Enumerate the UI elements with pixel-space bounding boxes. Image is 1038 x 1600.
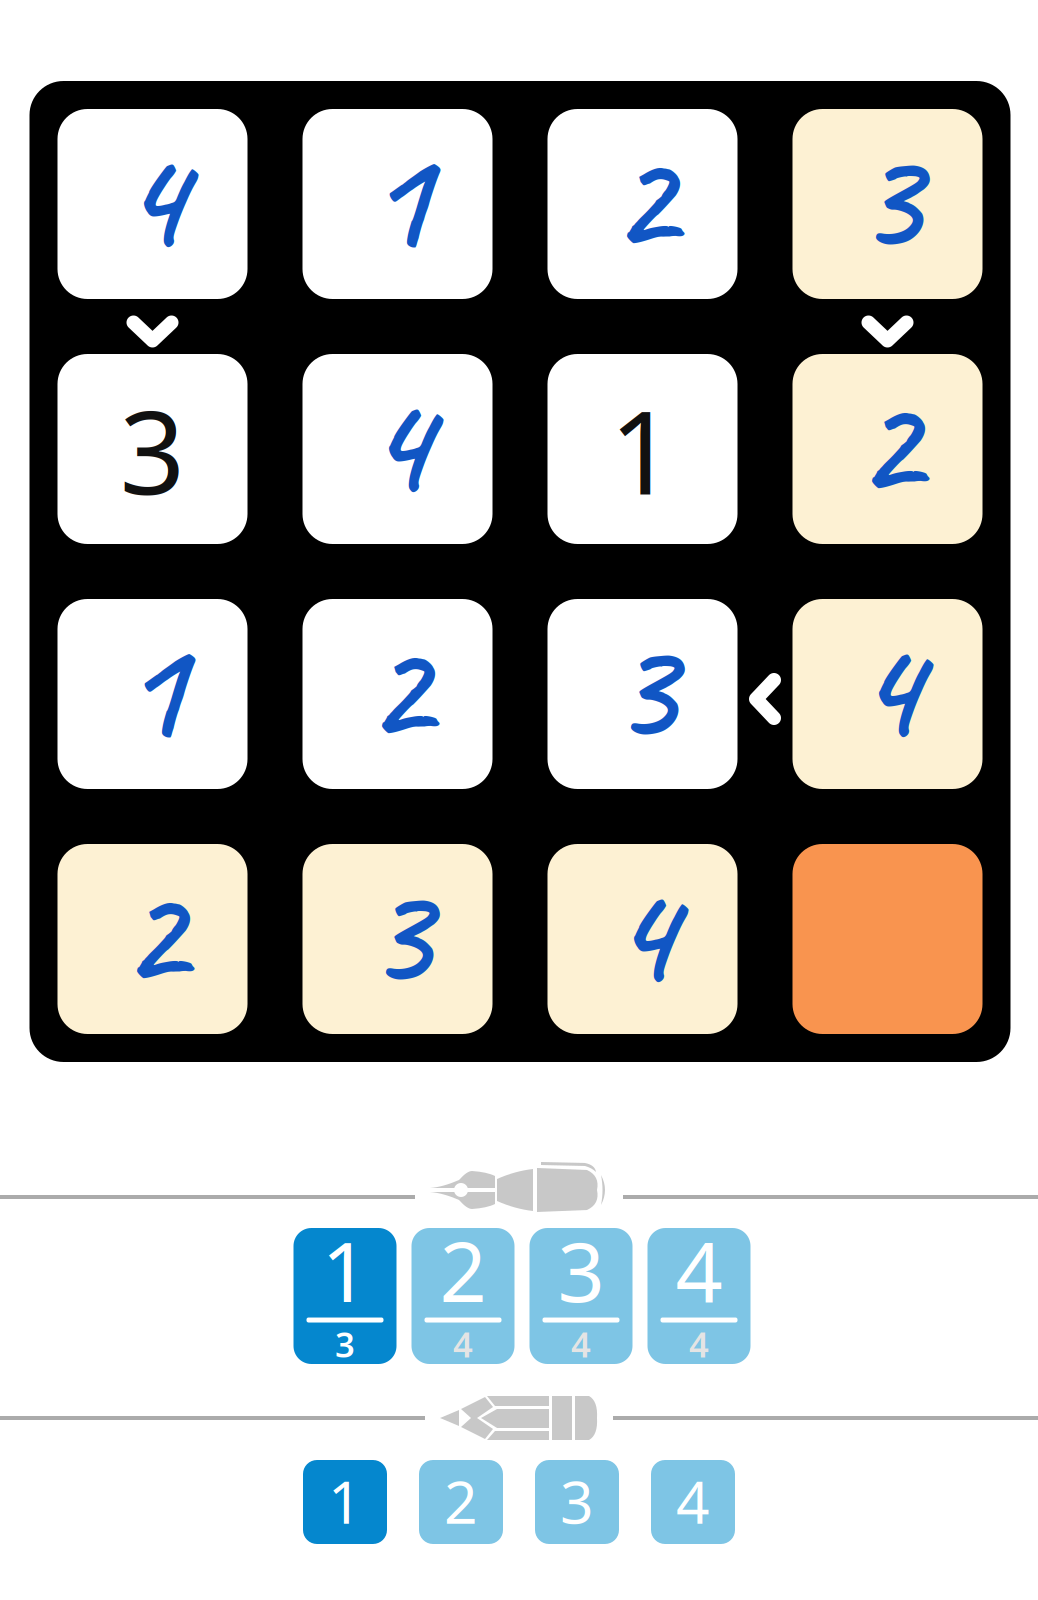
staticText: 1: [328, 1462, 362, 1540]
staticText: 4: [675, 1215, 722, 1325]
button[interactable]: 1: [302, 109, 492, 299]
staticText: 3: [855, 107, 920, 289]
button[interactable]: 1: [57, 599, 247, 789]
button[interactable]: 3: [529, 1228, 632, 1364]
staticText: 1: [321, 1215, 368, 1325]
staticText: 4: [676, 1462, 710, 1540]
button[interactable]: 4: [647, 1228, 750, 1364]
button[interactable]: [792, 844, 982, 1034]
staticText: 4: [453, 1321, 473, 1367]
staticText: 4: [855, 597, 920, 779]
button[interactable]: Pen mode: [415, 1162, 623, 1218]
button[interactable]: 4: [792, 599, 982, 789]
staticText: 4: [120, 107, 185, 289]
staticText: 4: [610, 842, 675, 1024]
staticText: 3: [119, 374, 185, 526]
button[interactable]: 2: [302, 599, 492, 789]
staticText: 3: [365, 842, 430, 1024]
staticText: 4: [571, 1321, 591, 1367]
staticText: 3: [557, 1215, 604, 1325]
button[interactable]: 2: [411, 1228, 514, 1364]
staticText: 2: [444, 1462, 478, 1540]
button[interactable]: 2: [547, 109, 737, 299]
staticText: 1: [365, 107, 430, 289]
button[interactable]: 4: [547, 844, 737, 1034]
button[interactable]: 4: [651, 1460, 735, 1544]
button[interactable]: 2: [419, 1460, 503, 1544]
button[interactable]: 2: [57, 844, 247, 1034]
button[interactable]: 3: [57, 354, 247, 544]
staticText: 2: [120, 842, 185, 1024]
staticText: 1: [609, 374, 675, 526]
staticText: 3: [610, 597, 675, 779]
staticText: 3: [335, 1321, 355, 1367]
staticText: 2: [365, 597, 430, 779]
button[interactable]: 2: [792, 354, 982, 544]
staticText: 4: [689, 1321, 709, 1367]
staticText: 4: [365, 352, 430, 534]
staticText: 3: [560, 1462, 594, 1540]
button[interactable]: 4: [57, 109, 247, 299]
button[interactable]: 1: [303, 1460, 387, 1544]
button[interactable]: Pencil mode: [425, 1390, 613, 1446]
button[interactable]: 1: [293, 1228, 396, 1364]
button[interactable]: 1: [547, 354, 737, 544]
button[interactable]: 3: [792, 109, 982, 299]
button[interactable]: 3: [302, 844, 492, 1034]
button[interactable]: 3: [535, 1460, 619, 1544]
button[interactable]: 3: [547, 599, 737, 789]
staticText: 2: [855, 352, 920, 534]
button[interactable]: 4: [302, 354, 492, 544]
staticText: 2: [610, 107, 675, 289]
staticText: 2: [439, 1215, 486, 1325]
staticText: 1: [120, 597, 185, 779]
